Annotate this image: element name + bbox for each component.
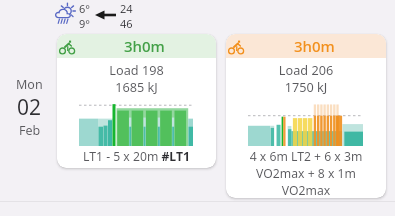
staticText: 1685 kJ [57,78,216,95]
button[interactable]: Mon [6,76,53,139]
staticText: 3h0m [124,36,165,56]
staticText: Load 198 [57,61,216,78]
staticText: VO2max [226,182,386,198]
staticText: 1750 kJ [226,78,386,95]
staticText: 02 [17,93,42,122]
staticText: VO2max + 8 x 1m [226,165,386,182]
button[interactable]: Weather [54,1,133,29]
staticText: 4 x 6m LT2 + 6 x 3m [226,148,386,165]
button[interactable]: 3h0m [226,34,386,198]
staticText: Mon [16,76,43,93]
staticText: 3h0m [294,36,335,56]
button[interactable]: 3h0m [57,34,216,168]
staticText: 6° [79,1,90,16]
staticText: LT1 - 5 x 20m #LT1 [57,148,216,165]
staticText: Load 206 [226,61,386,78]
staticText: 46 [120,16,133,29]
staticText: 9° [79,16,90,29]
staticText: 24 [120,1,133,16]
staticText: Feb [19,122,41,139]
